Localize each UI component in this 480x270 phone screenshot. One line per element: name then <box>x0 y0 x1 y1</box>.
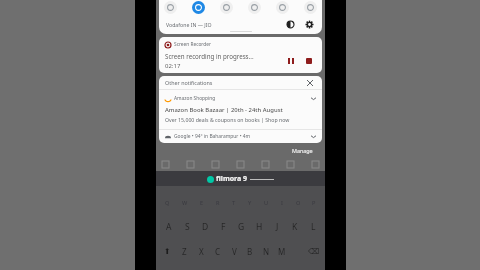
staticText: D <box>202 221 209 233</box>
staticText: Z <box>182 246 187 257</box>
button[interactable]: App 5 <box>262 161 269 168</box>
button[interactable]: Quick tile 3 <box>220 1 233 14</box>
button[interactable]: Manage <box>288 145 317 156</box>
staticText: J <box>276 221 279 233</box>
staticText: Google • 94° in Baharampur • 4m <box>174 133 251 140</box>
staticText: V <box>232 246 237 257</box>
button[interactable]: Settings <box>303 18 316 31</box>
button[interactable]: Key F <box>214 221 232 233</box>
staticText: H <box>256 221 263 233</box>
staticText: R <box>216 199 220 207</box>
staticText: T <box>232 199 236 207</box>
button[interactable]: Quick tile 1 <box>164 1 177 14</box>
staticText: Y <box>248 199 252 207</box>
button[interactable]: Pause recording <box>284 54 298 68</box>
button[interactable]: Dismiss all <box>304 77 316 89</box>
button[interactable]: App 1 <box>162 161 169 168</box>
staticText: Over 15,000 deals & coupons on books | S… <box>165 116 290 123</box>
button[interactable]: App 4 <box>237 161 244 168</box>
button[interactable]: Key J <box>268 221 286 233</box>
staticText: Manage <box>292 147 313 154</box>
staticText: M <box>278 246 286 257</box>
button[interactable]: Key C <box>210 246 226 257</box>
staticText: Other notifications <box>165 79 213 86</box>
staticText: A <box>166 221 172 233</box>
staticText: Amazon Shopping <box>174 95 216 102</box>
button[interactable]: Quick tile 5 <box>276 1 289 14</box>
button[interactable]: Screen Recorder <box>159 37 322 73</box>
staticText: E <box>200 199 204 207</box>
staticText: Amazon Book Bazaar | 20th - 24th August <box>165 106 283 114</box>
button[interactable]: Key Q <box>159 199 176 207</box>
button[interactable]: Amazon Shopping <box>159 90 322 129</box>
button[interactable]: Key X <box>193 246 210 257</box>
staticText: U <box>264 199 269 207</box>
button[interactable]: App 3 <box>212 161 219 168</box>
button[interactable]: App 6 <box>287 161 294 168</box>
button[interactable]: Key D <box>196 221 214 233</box>
staticText: C <box>215 246 221 257</box>
staticText: 02:17 <box>165 62 181 70</box>
button[interactable]: App 2 <box>187 161 194 168</box>
staticText: B <box>247 246 253 257</box>
button[interactable]: Quick tile 6 <box>304 1 317 14</box>
button[interactable]: Key M <box>274 246 290 257</box>
button[interactable]: Key V <box>226 246 242 257</box>
staticText: W <box>182 199 188 207</box>
staticText: Q <box>165 199 170 207</box>
button[interactable]: Key B <box>242 246 258 257</box>
button[interactable]: Google • 94° in Baharampur • 4m <box>159 130 322 143</box>
staticText: X <box>199 246 204 257</box>
button[interactable]: Key Z <box>176 246 193 257</box>
button[interactable]: Key N <box>258 246 274 257</box>
button[interactable]: App 7 <box>312 161 319 168</box>
button[interactable]: Key G <box>232 221 250 233</box>
staticText: L <box>311 221 316 233</box>
button[interactable]: Key ⬆ <box>159 247 176 256</box>
staticText: Vodafone IN — JIO <box>166 21 212 28</box>
staticText: G <box>238 221 245 233</box>
button[interactable]: Key W <box>176 199 193 207</box>
staticText: P <box>312 199 316 207</box>
button[interactable]: Key S <box>178 221 196 233</box>
button[interactable]: Key ⌫ <box>306 247 322 256</box>
staticText: Screen Recorder <box>174 41 211 48</box>
staticText: N <box>263 246 270 257</box>
button[interactable]: Key K <box>286 221 304 233</box>
staticText: Screen recording in progress... <box>165 52 254 60</box>
button[interactable]: Key A <box>159 221 178 233</box>
button[interactable]: Key R <box>210 199 226 207</box>
staticText: S <box>185 221 190 233</box>
staticText: F <box>221 221 226 233</box>
button[interactable]: Dark theme <box>284 18 297 31</box>
staticText: I <box>281 199 283 207</box>
button[interactable]: Key H <box>250 221 268 233</box>
staticText: filmora 9 <box>216 174 248 184</box>
staticText: ⬆ <box>164 247 171 256</box>
button[interactable]: Quick tile 4 <box>248 1 261 14</box>
staticText: O <box>296 199 301 207</box>
staticText: K <box>292 221 298 233</box>
staticText: ⌫ <box>308 247 320 256</box>
button[interactable]: Quick tile 2 <box>192 1 205 14</box>
button[interactable]: Stop recording <box>302 54 316 68</box>
button[interactable]: Key L <box>304 221 322 233</box>
